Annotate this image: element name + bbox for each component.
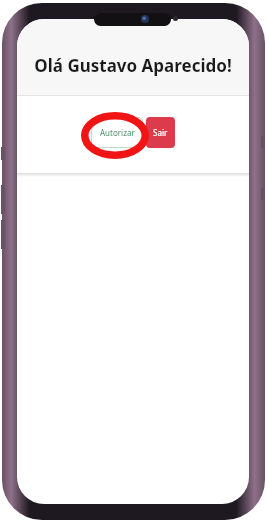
staticText: Sair: [153, 127, 168, 138]
button[interactable]: Autorizar: [91, 117, 143, 148]
staticText: Olá Gustavo Aparecido!: [34, 54, 232, 77]
staticText: Autorizar: [100, 127, 135, 138]
button[interactable]: Sair: [146, 117, 175, 148]
other: Destaque no botão Autorizar: [81, 112, 149, 159]
